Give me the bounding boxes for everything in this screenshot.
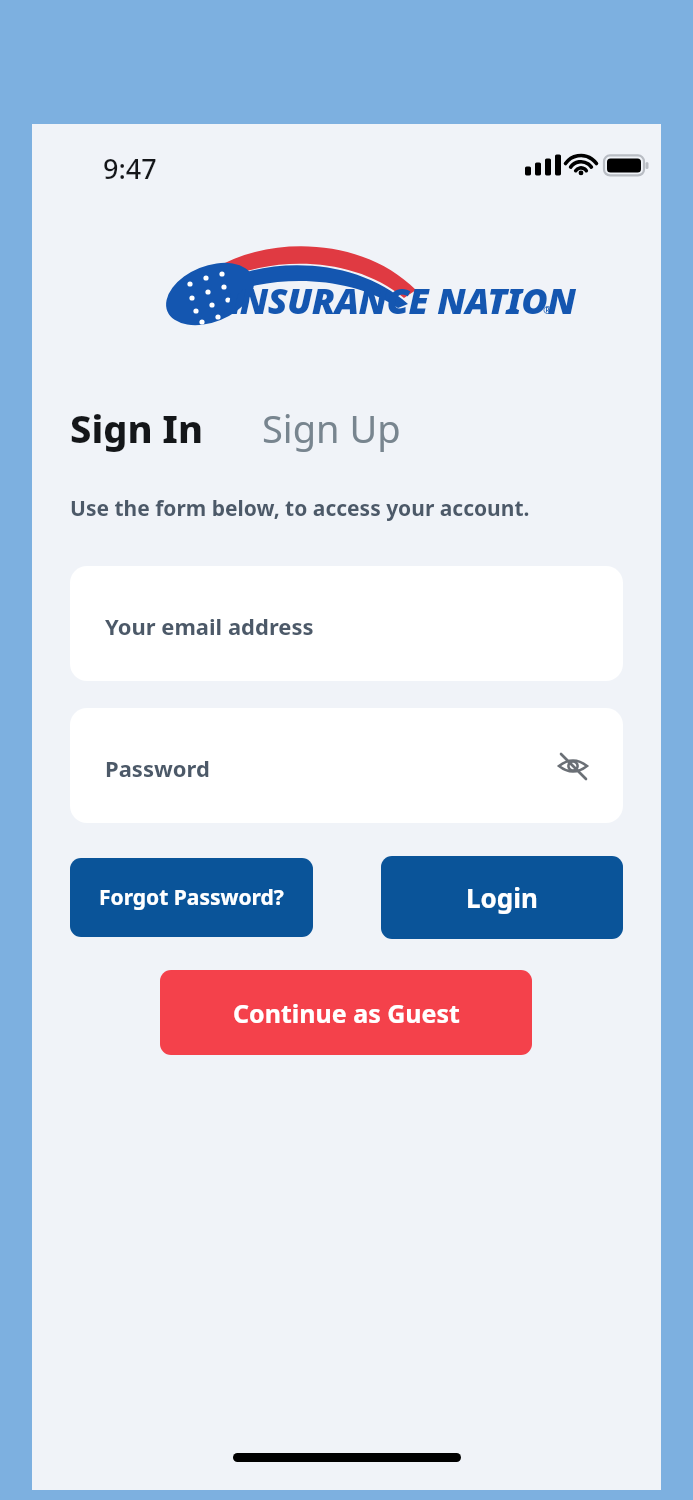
staticText: INSURANCE NATION [225,276,576,325]
staticText: Login [466,880,538,915]
button[interactable]: Forgot Password? [70,858,313,937]
button[interactable]: Login [381,856,623,939]
button[interactable]: Sign In [70,402,208,454]
staticText: Your email address [105,611,314,641]
staticText: 9:47 [103,150,157,187]
staticText: Forgot Password? [99,883,284,912]
button[interactable]: Sign Up [262,402,405,454]
button[interactable]: Your email address [70,566,623,681]
button[interactable]: Show password [545,738,601,794]
staticText: ® [543,302,553,317]
staticText: Password [105,753,210,783]
button[interactable]: Continue as Guest [160,970,532,1055]
button[interactable]: Password [70,708,623,823]
staticText: Sign In [70,402,204,454]
staticText: Use the form below, to access your accou… [70,494,530,523]
staticText: Continue as Guest [233,996,460,1030]
staticText: Sign Up [262,402,401,454]
